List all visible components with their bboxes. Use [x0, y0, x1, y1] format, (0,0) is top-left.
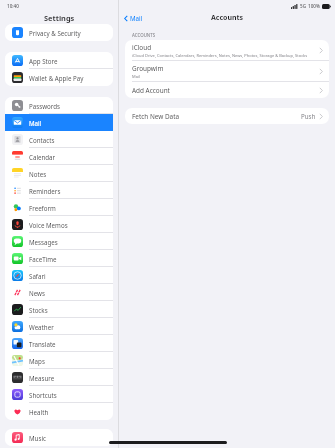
- button[interactable]: Privacy & Security: [5, 24, 113, 41]
- staticText: Weather: [29, 323, 54, 331]
- button[interactable]: Measure: [5, 369, 113, 386]
- button[interactable]: Voice Memos: [5, 216, 113, 233]
- staticText: Music: [29, 434, 46, 442]
- button[interactable]: Contacts: [5, 131, 113, 148]
- button[interactable]: Maps: [5, 352, 113, 369]
- staticText: News: [29, 289, 45, 297]
- staticText: Measure: [29, 374, 55, 382]
- button[interactable]: Messages: [5, 233, 113, 250]
- staticText: Mail: [132, 74, 140, 79]
- staticText: Freeform: [29, 204, 56, 212]
- staticText: Add Account: [132, 86, 170, 95]
- button[interactable]: Back to Mail: [124, 14, 143, 22]
- staticText: Passwords: [29, 102, 60, 110]
- button[interactable]: Add Account: [125, 82, 329, 98]
- staticText: Fetch New Data: [132, 112, 180, 121]
- staticText: Groupwim: [132, 64, 164, 73]
- staticText: Accounts: [211, 13, 244, 23]
- button[interactable]: Fetch New Data: [125, 108, 329, 124]
- staticText: Wallet & Apple Pay: [29, 74, 84, 82]
- button[interactable]: Calendar: [5, 148, 113, 165]
- staticText: Safari: [29, 272, 46, 280]
- button[interactable]: iCloud: [125, 40, 329, 61]
- staticText: 10:40: [7, 3, 19, 9]
- staticText: Mail: [29, 119, 42, 127]
- staticText: 5G: [300, 3, 306, 9]
- staticText: Voice Memos: [29, 221, 68, 229]
- staticText: Privacy & Security: [29, 29, 81, 37]
- button[interactable]: Freeform: [5, 199, 113, 216]
- staticText: Mail: [130, 14, 143, 22]
- button[interactable]: Music: [5, 429, 113, 446]
- staticText: Notes: [29, 170, 47, 178]
- button[interactable]: FaceTime: [5, 250, 113, 267]
- button[interactable]: Safari: [5, 267, 113, 284]
- button[interactable]: Reminders: [5, 182, 113, 199]
- button[interactable]: Weather: [5, 318, 113, 335]
- button[interactable]: Passwords: [5, 97, 113, 114]
- staticText: 100%: [308, 3, 320, 9]
- staticText: Calendar: [29, 153, 56, 161]
- staticText: iCloud Drive, Contacts, Calendars, Remin…: [132, 53, 308, 58]
- staticText: Settings: [44, 13, 75, 23]
- staticText: Translate: [29, 340, 56, 348]
- staticText: Contacts: [29, 136, 55, 144]
- staticText: iCloud: [132, 43, 152, 52]
- button[interactable]: Notes: [5, 165, 113, 182]
- staticText: Health: [29, 408, 49, 416]
- staticText: ACCOUNTS: [132, 32, 156, 38]
- staticText: Stocks: [29, 306, 48, 314]
- button[interactable]: Health: [5, 403, 113, 420]
- staticText: Messages: [29, 238, 58, 246]
- staticText: Reminders: [29, 187, 61, 195]
- staticText: Maps: [29, 357, 45, 365]
- button[interactable]: Translate: [5, 335, 113, 352]
- button[interactable]: Wallet & Apple Pay: [5, 69, 113, 86]
- button[interactable]: Stocks: [5, 301, 113, 318]
- staticText: FaceTime: [29, 255, 57, 263]
- button[interactable]: Mail: [5, 114, 113, 131]
- staticText: App Store: [29, 57, 58, 65]
- button[interactable]: News: [5, 284, 113, 301]
- button[interactable]: Shortcuts: [5, 386, 113, 403]
- button[interactable]: App Store: [5, 52, 113, 69]
- staticText: Push: [301, 112, 316, 120]
- button[interactable]: Groupwim: [125, 61, 329, 82]
- staticText: Shortcuts: [29, 391, 57, 399]
